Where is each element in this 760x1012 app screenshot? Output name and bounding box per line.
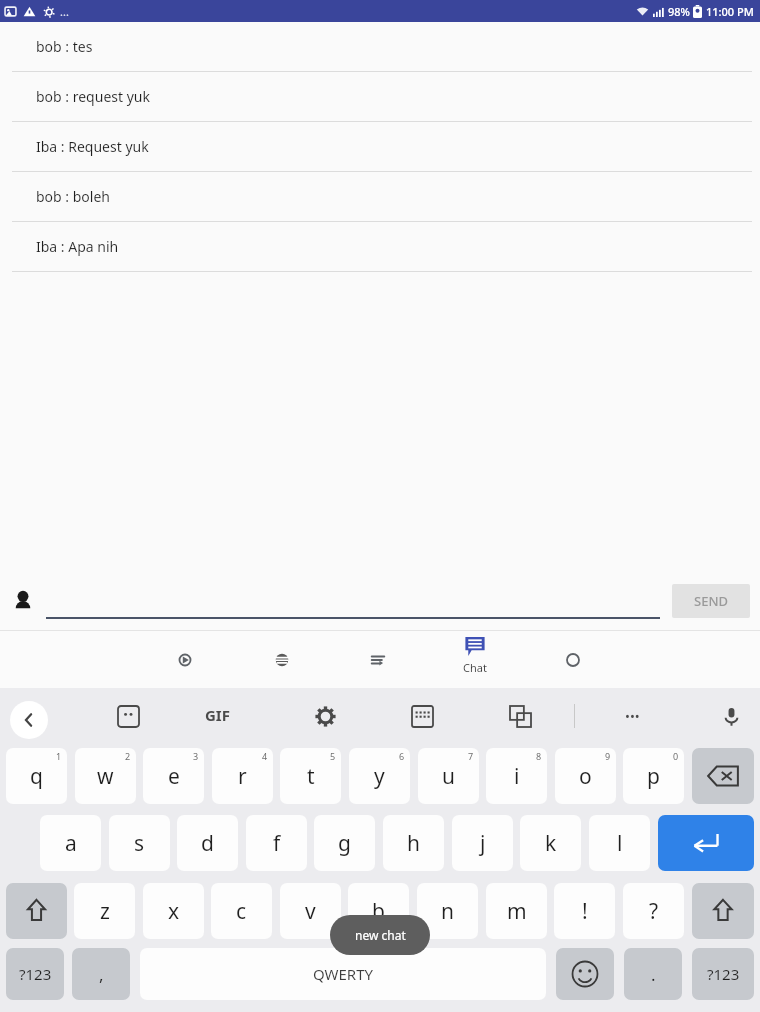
button[interactable]: . bbox=[624, 948, 682, 1000]
button[interactable]: SEND bbox=[672, 584, 750, 618]
staticText: z bbox=[100, 897, 110, 926]
button[interactable]: ? bbox=[623, 883, 684, 939]
button[interactable]: ! bbox=[554, 883, 615, 939]
staticText: m bbox=[507, 897, 527, 926]
button[interactable]: r bbox=[212, 748, 273, 804]
button[interactable]: p bbox=[623, 748, 684, 804]
staticText: i bbox=[514, 762, 520, 791]
staticText: 7 bbox=[468, 750, 474, 762]
staticText: 5 bbox=[330, 750, 336, 762]
button[interactable]: n bbox=[417, 883, 478, 939]
button[interactable]: s bbox=[109, 815, 170, 871]
staticText: QWERTY bbox=[313, 964, 374, 984]
button[interactable]: Voice input bbox=[711, 696, 751, 736]
button[interactable]: Back bbox=[10, 701, 48, 739]
staticText: 4 bbox=[262, 750, 268, 762]
staticText: SEND bbox=[694, 592, 728, 610]
staticText: y bbox=[374, 762, 385, 791]
staticText: e bbox=[168, 762, 180, 791]
staticText: u bbox=[442, 762, 455, 791]
button[interactable]: h bbox=[383, 815, 444, 871]
staticText: t bbox=[307, 762, 315, 791]
button[interactable] bbox=[46, 583, 660, 619]
staticText: n bbox=[441, 897, 454, 926]
staticText: bob : request yuk bbox=[36, 87, 150, 106]
button[interactable]: t bbox=[280, 748, 341, 804]
staticText: o bbox=[579, 762, 592, 791]
staticText: k bbox=[545, 829, 557, 858]
staticText: Chat bbox=[463, 660, 487, 675]
staticText: 2 bbox=[125, 750, 131, 762]
staticText: x bbox=[168, 897, 180, 926]
button[interactable]: q bbox=[6, 748, 67, 804]
staticText: ••• bbox=[625, 707, 640, 725]
staticText: 11:00 PM bbox=[706, 4, 754, 19]
staticText: s bbox=[134, 829, 145, 858]
button[interactable]: k bbox=[520, 815, 581, 871]
button[interactable]: Spotify bbox=[260, 638, 304, 682]
button[interactable]: GIF bbox=[205, 705, 230, 725]
button[interactable]: o bbox=[555, 748, 616, 804]
staticText: ? bbox=[649, 897, 659, 926]
button[interactable]: z bbox=[74, 883, 135, 939]
button[interactable]: g bbox=[314, 815, 375, 871]
button[interactable]: Keyboard bbox=[402, 696, 442, 736]
button[interactable]: Enter bbox=[658, 815, 754, 871]
button[interactable]: Emoji bbox=[556, 948, 614, 1000]
button[interactable]: i bbox=[486, 748, 547, 804]
button[interactable]: Translate bbox=[500, 696, 540, 736]
staticText: r bbox=[238, 762, 247, 791]
button[interactable]: QWERTY bbox=[140, 948, 546, 1000]
staticText: new chat bbox=[355, 927, 406, 943]
button[interactable]: Queue bbox=[356, 638, 400, 682]
button[interactable]: Chat bbox=[447, 634, 503, 675]
button[interactable]: d bbox=[177, 815, 238, 871]
staticText: 8 bbox=[536, 750, 542, 762]
button[interactable]: u bbox=[418, 748, 479, 804]
staticText: ... bbox=[60, 4, 69, 19]
staticText: 98% bbox=[668, 4, 690, 19]
button[interactable]: w bbox=[75, 748, 136, 804]
button[interactable]: m bbox=[486, 883, 547, 939]
button[interactable]: Sticker bbox=[108, 696, 148, 736]
button[interactable]: bob : boleh bbox=[0, 172, 760, 221]
button[interactable]: Play bbox=[163, 638, 207, 682]
staticText: GIF bbox=[205, 705, 230, 725]
button[interactable]: c bbox=[211, 883, 272, 939]
button[interactable]: bob : tes bbox=[0, 22, 760, 71]
button[interactable]: Shift bbox=[692, 883, 754, 939]
button[interactable]: , bbox=[72, 948, 130, 1000]
staticText: g bbox=[338, 829, 351, 858]
button[interactable]: b bbox=[348, 883, 409, 939]
button[interactable]: ?123 bbox=[6, 948, 64, 1000]
staticText: 0 bbox=[673, 750, 679, 762]
button[interactable]: Iba : Apa nih bbox=[0, 222, 760, 271]
button[interactable]: Settings bbox=[305, 696, 345, 736]
button[interactable]: v bbox=[280, 883, 341, 939]
staticText: a bbox=[65, 829, 77, 858]
staticText: j bbox=[480, 829, 486, 858]
button[interactable]: f bbox=[246, 815, 307, 871]
button[interactable]: e bbox=[143, 748, 204, 804]
button[interactable]: j bbox=[452, 815, 513, 871]
staticText: 6 bbox=[399, 750, 405, 762]
button[interactable]: Backspace bbox=[692, 748, 754, 804]
staticText: h bbox=[407, 829, 420, 858]
button[interactable]: y bbox=[349, 748, 410, 804]
staticText: bob : tes bbox=[36, 37, 93, 56]
button[interactable]: bob : request yuk bbox=[0, 72, 760, 121]
staticText: f bbox=[273, 829, 281, 858]
button[interactable]: l bbox=[589, 815, 650, 871]
staticText: v bbox=[305, 897, 316, 926]
staticText: Iba : Apa nih bbox=[36, 237, 119, 256]
button[interactable]: ?123 bbox=[692, 948, 754, 1000]
button[interactable]: a bbox=[40, 815, 101, 871]
staticText: 3 bbox=[193, 750, 199, 762]
button[interactable]: Help bbox=[551, 638, 595, 682]
button[interactable]: Shift bbox=[6, 883, 67, 939]
button[interactable]: x bbox=[143, 883, 204, 939]
button[interactable]: More bbox=[610, 705, 654, 727]
button[interactable]: Iba : Request yuk bbox=[0, 122, 760, 171]
staticText: d bbox=[201, 829, 214, 858]
staticText: 1 bbox=[56, 750, 62, 762]
